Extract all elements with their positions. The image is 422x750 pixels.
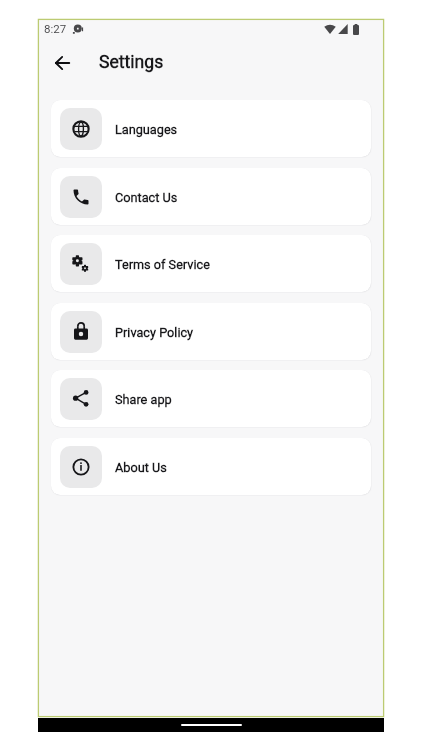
staticText: Share app <box>115 392 172 407</box>
button[interactable]: Terms of Service <box>51 235 371 292</box>
staticText: Privacy Policy <box>115 325 194 340</box>
button[interactable]: Back <box>46 47 78 79</box>
staticText: Settings <box>99 52 164 73</box>
button[interactable]: Contact Us <box>51 168 371 225</box>
staticText: Contact Us <box>115 190 178 205</box>
staticText: About Us <box>115 460 167 475</box>
button[interactable]: Privacy Policy <box>51 303 371 360</box>
button[interactable]: About Us <box>51 438 371 495</box>
staticText: Languages <box>115 122 178 137</box>
staticText: Terms of Service <box>115 257 210 272</box>
button[interactable]: Languages <box>51 100 371 157</box>
staticText: 8:27 <box>44 22 67 35</box>
button[interactable]: Share app <box>51 370 371 427</box>
